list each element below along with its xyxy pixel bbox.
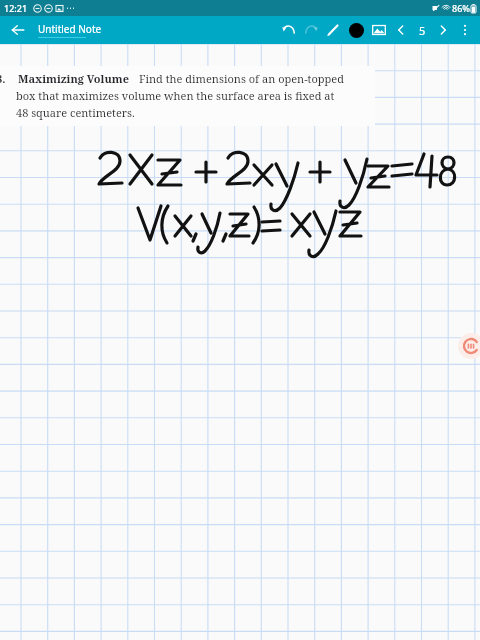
- staticText: 12:21: [4, 2, 28, 14]
- staticText: 86%: [452, 2, 470, 14]
- button[interactable]: More options: [454, 19, 476, 41]
- button[interactable]: 5: [412, 20, 432, 40]
- staticText: Maximizing Volume: [18, 71, 129, 86]
- staticText: ⋯: [66, 3, 75, 13]
- button[interactable]: Back: [8, 20, 28, 40]
- button[interactable]: Assistant: [458, 333, 480, 359]
- staticText: Find the dimensions of an open-topped: [139, 71, 344, 86]
- staticText: box that maximizes volume when the surfa…: [16, 88, 335, 103]
- staticText: Untitled Note: [38, 22, 102, 36]
- button[interactable]: Untitled Note: [38, 22, 102, 38]
- button[interactable]: Redo: [300, 19, 322, 41]
- button[interactable]: Colour black: [344, 18, 368, 42]
- staticText: 5: [419, 23, 426, 38]
- button[interactable]: Previous page: [390, 19, 412, 41]
- button[interactable]: 8.: [0, 66, 375, 126]
- button[interactable]: Pen: [322, 19, 344, 41]
- button[interactable]: Insert image: [368, 19, 390, 41]
- staticText: 8.: [0, 71, 6, 86]
- staticText: 48 square centimeters.: [16, 105, 135, 120]
- button[interactable]: Next page: [432, 19, 454, 41]
- button[interactable]: Undo: [278, 19, 300, 41]
